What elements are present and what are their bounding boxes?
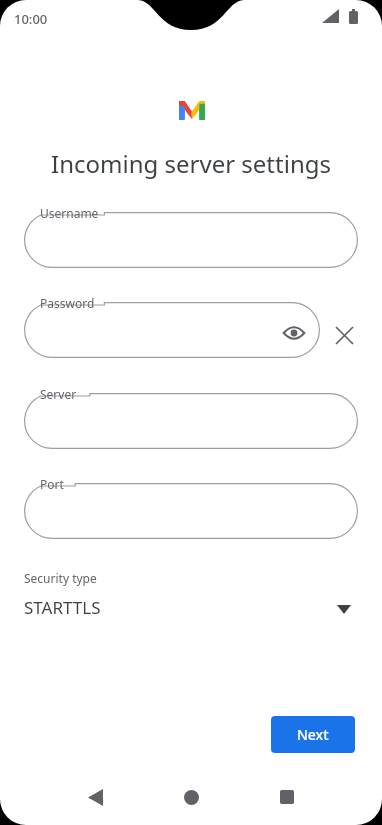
staticText: STARTTLS <box>24 596 101 619</box>
staticText: Security type <box>24 570 97 586</box>
button[interactable]: Port <box>24 483 358 539</box>
button[interactable]: Back <box>79 781 111 813</box>
button[interactable]: Username <box>24 212 358 268</box>
button[interactable]: Password <box>24 302 320 358</box>
button[interactable]: Home <box>175 781 207 813</box>
staticText: Password <box>40 295 95 311</box>
staticText: Port <box>40 476 64 492</box>
staticText: Server <box>40 386 77 402</box>
button[interactable]: Server <box>24 393 358 449</box>
button[interactable]: Clear password <box>330 321 358 349</box>
staticText: Next <box>297 725 329 744</box>
staticText: Username <box>40 205 99 221</box>
staticText: 10:00 <box>14 10 48 28</box>
button[interactable]: Show password <box>278 317 310 349</box>
button[interactable]: Next <box>271 716 355 753</box>
button[interactable]: Security type <box>12 563 370 631</box>
button[interactable]: Recent apps <box>271 781 303 813</box>
staticText: Incoming server settings <box>0 147 382 180</box>
